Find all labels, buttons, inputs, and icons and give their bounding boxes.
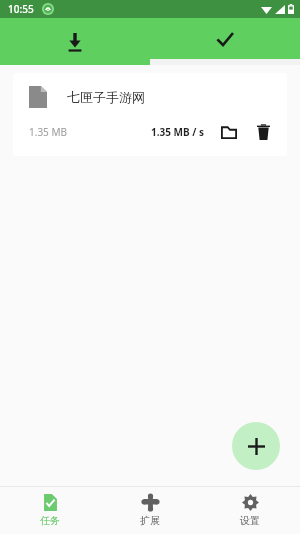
button[interactable]: Delete: [251, 120, 275, 144]
button[interactable]: Downloading: [0, 18, 150, 65]
button[interactable]: 扩展: [100, 487, 200, 527]
staticText: 设置: [240, 514, 260, 527]
button[interactable]: 设置: [200, 487, 300, 527]
staticText: 1.35 MB: [29, 125, 68, 139]
button[interactable]: 七匣子手游网: [13, 73, 287, 156]
button[interactable]: 任务: [0, 487, 100, 527]
button[interactable]: Open folder: [217, 120, 241, 144]
button[interactable]: Completed: [150, 18, 300, 59]
staticText: 10:55: [8, 2, 34, 16]
staticText: 七匣子手游网: [67, 89, 145, 105]
staticText: 1.35 MB / s: [151, 125, 205, 139]
staticText: 扩展: [140, 514, 160, 527]
button[interactable]: Add download: [232, 422, 280, 470]
staticText: 任务: [40, 514, 60, 527]
